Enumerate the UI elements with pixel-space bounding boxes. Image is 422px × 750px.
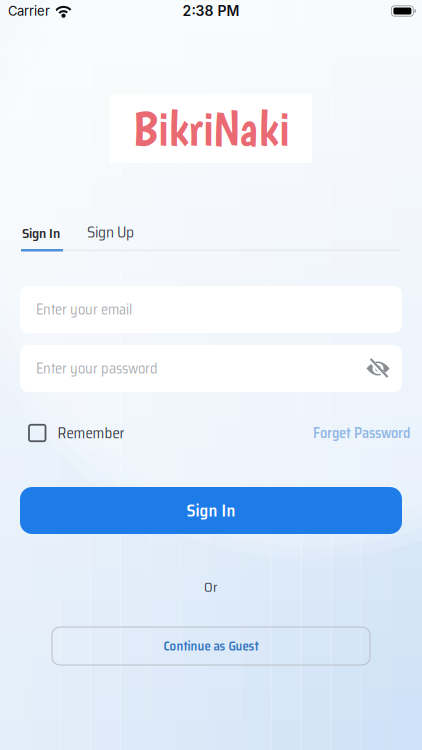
staticText: Or xyxy=(204,576,218,598)
staticText: Sign In xyxy=(22,222,60,244)
staticText: Enter your email xyxy=(36,298,132,321)
staticText: Remember xyxy=(57,421,124,445)
button[interactable]: Sign Up xyxy=(87,220,134,244)
staticText: Sign In xyxy=(186,497,235,524)
staticText: 2:38 PM xyxy=(182,2,239,19)
staticText: Sign Up xyxy=(87,220,134,244)
button[interactable]: Sign In xyxy=(22,222,60,244)
button[interactable]: Enter your password xyxy=(20,345,402,392)
staticText: Forget Password xyxy=(313,422,410,444)
staticText: BikriNaki xyxy=(132,100,289,157)
staticText: Enter your password xyxy=(36,357,158,380)
button[interactable]: Sign In xyxy=(20,487,402,534)
button[interactable]: Remember xyxy=(29,421,124,445)
button[interactable]: Continue as Guest xyxy=(52,627,370,665)
staticText: Carrier xyxy=(8,3,50,19)
button[interactable]: Enter your email xyxy=(20,286,402,333)
button[interactable]: Forget Password xyxy=(313,422,410,444)
staticText: Continue as Guest xyxy=(163,636,258,656)
